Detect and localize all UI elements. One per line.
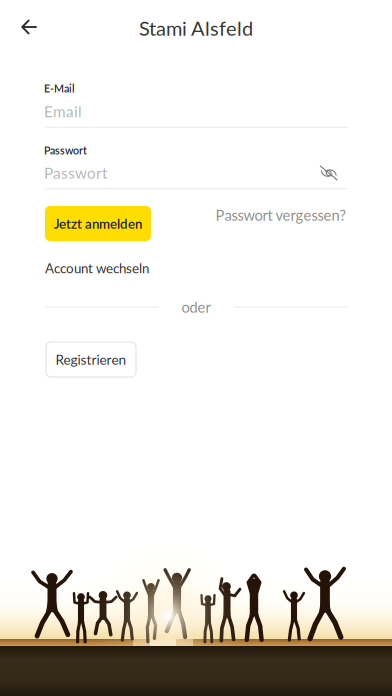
staticText: E-Mail <box>44 82 75 95</box>
staticText: oder <box>181 298 210 316</box>
staticText: Jetzt anmelden <box>54 215 142 231</box>
button[interactable]: Passwort vergessen? <box>214 203 348 227</box>
staticText: Passwort <box>44 163 107 182</box>
button[interactable]: Account wechseln <box>45 258 149 278</box>
staticText: Stami Alsfeld <box>139 16 253 40</box>
button[interactable]: Back <box>9 7 49 47</box>
button[interactable]: Registrieren <box>46 342 136 377</box>
staticText: Account wechseln <box>45 260 149 276</box>
staticText: Passwort vergessen? <box>215 206 346 224</box>
button[interactable]: Jetzt anmelden <box>45 206 151 241</box>
staticText: Email <box>44 102 82 120</box>
staticText: Registrieren <box>55 351 126 368</box>
button[interactable]: Show password <box>314 160 344 186</box>
staticText: Passwort <box>44 144 87 157</box>
